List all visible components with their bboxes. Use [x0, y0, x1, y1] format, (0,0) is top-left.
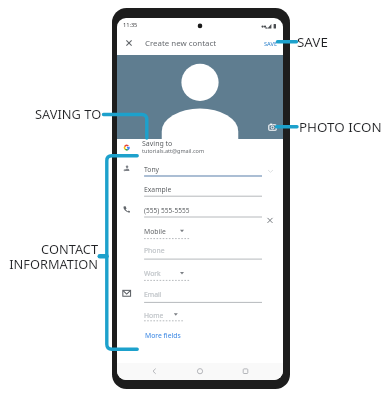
staticText: CONTACT INFORMATION	[0, 240, 98, 273]
staticText: PHOTO ICON	[299, 118, 382, 136]
staticText: Home	[144, 311, 164, 320]
staticText: 11:35	[123, 21, 138, 29]
staticText: SAVE	[297, 33, 328, 51]
staticText: Tony	[144, 165, 160, 174]
staticText: Mobile	[144, 227, 166, 236]
staticText: Work	[144, 269, 161, 278]
button[interactable]: Change photo	[265, 120, 280, 135]
button[interactable]: SAVE	[261, 37, 281, 51]
staticText: SAVE	[264, 40, 278, 48]
staticText: Email	[144, 290, 162, 299]
staticText: Phone	[144, 246, 165, 255]
staticText: tutorials.att@gmail.com	[142, 147, 205, 154]
staticText: (555) 555-5555	[144, 206, 190, 215]
staticText: More fields	[145, 331, 181, 340]
button[interactable]: More fields	[142, 328, 184, 343]
staticText: Example	[144, 185, 172, 194]
staticText: Saving to	[142, 139, 173, 149]
staticText: SAVING TO	[35, 105, 102, 123]
button[interactable]: Close	[119, 33, 139, 53]
staticText: Create new contact	[145, 38, 217, 49]
